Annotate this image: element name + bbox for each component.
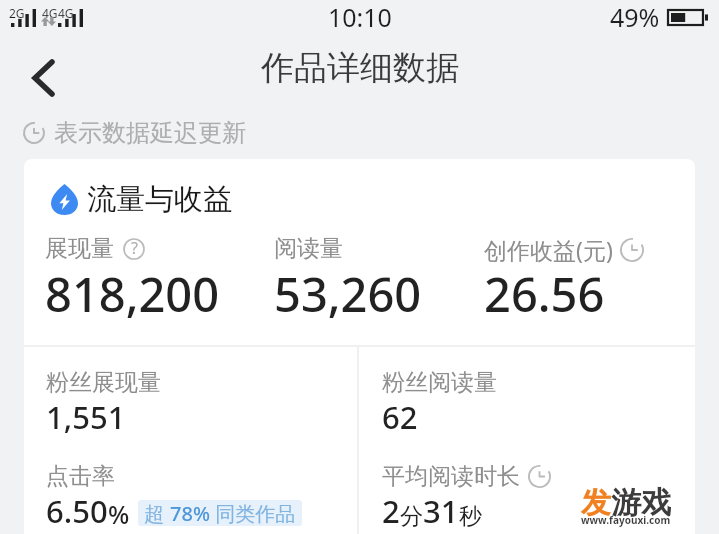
- button[interactable]: 表示数据延迟更新: [23, 118, 246, 148]
- button[interactable]: What is 展现量: [123, 238, 145, 260]
- staticText: www.fayouxi.com: [581, 513, 671, 527]
- staticText: 流量与收益: [87, 181, 232, 218]
- staticText: 展现量: [45, 234, 114, 263]
- staticText: 10:10: [328, 0, 392, 34]
- button[interactable]: 阅读量: [274, 234, 343, 263]
- staticText: 26.56: [484, 262, 605, 326]
- staticText: 49%: [610, 0, 660, 34]
- staticText: 53,260: [274, 262, 422, 326]
- staticText: 点击率: [46, 462, 115, 491]
- staticText: 分: [400, 502, 423, 531]
- staticText: 2: [382, 490, 400, 532]
- staticText: 同类作品: [210, 500, 296, 526]
- staticText: 818,200: [45, 262, 220, 326]
- button[interactable]: 创作收益(元): [484, 234, 644, 265]
- button[interactable]: 粉丝阅读量: [382, 368, 497, 397]
- button[interactable]: Back: [8, 47, 78, 109]
- staticText: 超: [144, 500, 170, 526]
- staticText: 发: [581, 484, 611, 522]
- staticText: 粉丝展现量: [46, 368, 161, 397]
- staticText: 作品详细数据: [261, 47, 459, 89]
- staticText: 2G: [9, 5, 25, 21]
- staticText: 秒: [459, 502, 482, 531]
- staticText: 粉丝阅读量: [382, 368, 497, 397]
- button[interactable]: 流量与收益: [51, 181, 232, 218]
- staticText: 1,551: [46, 396, 126, 438]
- staticText: 4G: [58, 5, 74, 21]
- staticText: 游戏: [611, 484, 671, 522]
- button[interactable]: 粉丝展现量: [46, 368, 161, 397]
- staticText: 78%: [170, 500, 210, 526]
- staticText: 创作收益(元): [484, 234, 613, 265]
- staticText: 表示数据延迟更新: [54, 118, 246, 148]
- other: Delayed data: [528, 465, 551, 488]
- button[interactable]: 平均阅读时长: [382, 462, 551, 491]
- staticText: 31: [423, 490, 459, 532]
- button[interactable]: 展现量: [45, 234, 145, 263]
- button[interactable]: 点击率: [46, 462, 115, 491]
- staticText: 4G: [42, 5, 58, 21]
- staticText: ?: [131, 237, 138, 259]
- staticText: 阅读量: [274, 234, 343, 263]
- staticText: 6.50: [46, 490, 108, 532]
- staticText: %: [108, 497, 130, 531]
- staticText: 62: [382, 396, 418, 438]
- staticText: 平均阅读时长: [382, 462, 520, 491]
- other: Delayed data: [620, 238, 644, 262]
